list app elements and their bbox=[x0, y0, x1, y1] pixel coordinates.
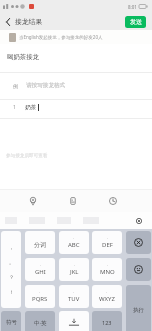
staticText: 请按写接龙格式 bbox=[26, 82, 66, 89]
staticText: · bbox=[40, 263, 42, 268]
staticText: · bbox=[39, 290, 41, 295]
staticText: · bbox=[74, 263, 76, 268]
button[interactable]: · bbox=[92, 258, 122, 281]
button[interactable]: · bbox=[25, 285, 55, 308]
staticText: MNO bbox=[100, 268, 115, 276]
staticText: 执行 bbox=[133, 307, 144, 314]
staticText: 8:01 bbox=[128, 4, 137, 10]
button[interactable]: Back bbox=[0, 13, 16, 30]
staticText: · bbox=[107, 263, 109, 268]
staticText: 1 bbox=[13, 104, 16, 111]
button[interactable]: Hide keyboard bbox=[133, 215, 144, 226]
button[interactable]: · bbox=[59, 285, 89, 308]
staticText: 发送 bbox=[130, 18, 142, 26]
button[interactable]: · bbox=[92, 231, 122, 254]
staticText: DEF bbox=[102, 241, 113, 249]
button[interactable]: · bbox=[92, 285, 122, 308]
staticText: 当English发起接龙，参与接龙的好友20人 bbox=[19, 34, 103, 40]
staticText: · bbox=[106, 290, 108, 295]
button[interactable]: 执行 bbox=[126, 285, 151, 331]
button[interactable]: · bbox=[59, 231, 89, 254]
button[interactable]: Photo bbox=[64, 192, 81, 209]
button[interactable]: 例 bbox=[0, 72, 152, 99]
button[interactable]: 中·英 bbox=[25, 311, 55, 331]
staticText: · bbox=[73, 290, 75, 295]
button[interactable]: Backspace bbox=[126, 231, 151, 254]
button[interactable]: Location bbox=[24, 192, 41, 209]
staticText: 奶茶 bbox=[25, 104, 37, 111]
button[interactable]: · bbox=[59, 258, 89, 281]
staticText: · bbox=[73, 236, 75, 241]
staticText: TUV bbox=[68, 295, 80, 303]
staticText: 中·英 bbox=[34, 319, 47, 327]
button[interactable]: ， bbox=[1, 231, 21, 308]
button[interactable]: 符号 bbox=[1, 311, 21, 331]
button[interactable]: Emoji bbox=[126, 258, 151, 281]
staticText: ！ bbox=[9, 289, 14, 295]
staticText: 参与接龙后即可查看 bbox=[6, 153, 48, 159]
staticText: JKL bbox=[70, 268, 79, 276]
staticText: 例 bbox=[13, 83, 18, 89]
staticText: ？ bbox=[9, 274, 14, 280]
staticText: 符号 bbox=[6, 319, 17, 326]
staticText: WXYZ bbox=[99, 295, 115, 303]
button[interactable]: 分词 bbox=[25, 231, 55, 254]
staticText: ， bbox=[9, 244, 14, 250]
staticText: 123 bbox=[102, 319, 112, 326]
staticText: 分词 bbox=[34, 241, 46, 249]
button[interactable]: 发送 bbox=[125, 16, 146, 28]
button[interactable]: · bbox=[25, 258, 55, 281]
button[interactable]: 1 bbox=[0, 98, 152, 116]
staticText: 。 bbox=[9, 259, 14, 265]
staticText: ABC bbox=[68, 241, 80, 249]
button[interactable]: History bbox=[104, 192, 121, 209]
staticText: PQRS bbox=[32, 295, 48, 303]
button[interactable]: 123 bbox=[92, 311, 122, 331]
button[interactable]: Space bbox=[59, 311, 89, 331]
staticText: 接龙结果 bbox=[15, 17, 43, 26]
staticText: 喝奶茶接龙 bbox=[7, 53, 39, 61]
staticText: · bbox=[107, 236, 109, 241]
staticText: GHI bbox=[35, 268, 46, 276]
